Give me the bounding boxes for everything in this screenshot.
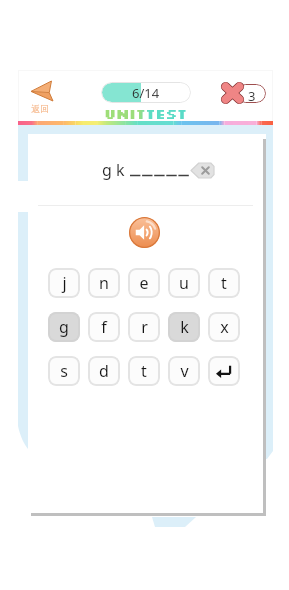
staticText: j (62, 272, 67, 294)
button[interactable]: v (168, 356, 200, 386)
button[interactable]: Back (28, 76, 62, 116)
button[interactable]: Backspace (191, 163, 214, 178)
button[interactable]: 6/14 (101, 82, 191, 103)
staticText: e (139, 272, 149, 294)
staticText: s (60, 360, 68, 382)
staticText: t (141, 360, 147, 382)
button[interactable]: t (208, 268, 240, 298)
button[interactable]: e (128, 268, 160, 298)
button[interactable]: f (88, 312, 120, 342)
staticText: v (180, 360, 189, 382)
staticText: x (220, 316, 229, 338)
button[interactable]: g (48, 312, 80, 342)
button[interactable]: r (128, 312, 160, 342)
button[interactable]: Play sound (129, 217, 160, 248)
staticText: k (180, 316, 189, 338)
button[interactable]: j (48, 268, 80, 298)
button[interactable]: k (168, 312, 200, 342)
staticText: n (99, 272, 109, 294)
button[interactable] (208, 356, 240, 386)
button[interactable]: s (48, 356, 80, 386)
button[interactable]: n (88, 268, 120, 298)
staticText: t (221, 272, 227, 294)
button[interactable]: x (208, 312, 240, 342)
staticText: g k (102, 159, 125, 181)
button[interactable]: t (128, 356, 160, 386)
staticText: r (141, 316, 148, 338)
staticText: 6/14 (132, 84, 160, 102)
button[interactable]: u (168, 268, 200, 298)
staticText: f (101, 316, 107, 338)
staticText: UNITTEST (104, 105, 187, 123)
button[interactable]: Lives remaining (220, 81, 266, 105)
button[interactable]: d (88, 356, 120, 386)
staticText: u (179, 272, 189, 294)
staticText: 返回 (31, 103, 49, 114)
staticText: g (59, 316, 69, 338)
staticText: 3 (248, 87, 256, 105)
staticText: d (99, 360, 109, 382)
